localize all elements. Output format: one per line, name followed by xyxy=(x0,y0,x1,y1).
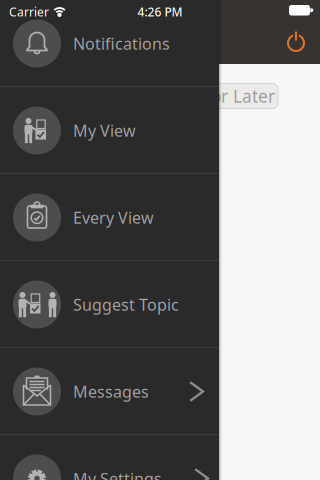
staticText: Notifications xyxy=(73,33,170,54)
button[interactable]: Vote Now or Later xyxy=(100,83,278,108)
staticText: Carrier xyxy=(9,4,49,20)
button[interactable]: My Settings xyxy=(0,435,219,480)
staticText: Suggest Topic xyxy=(73,294,179,315)
staticText: My View xyxy=(73,120,136,141)
button[interactable]: Notifications xyxy=(0,0,219,87)
staticText: Every View xyxy=(73,207,154,228)
button[interactable] xyxy=(274,22,318,62)
button[interactable]: Messages xyxy=(0,348,219,435)
staticText: My Settings xyxy=(73,468,162,480)
staticText: 4:26 PM xyxy=(137,4,182,20)
staticText: Messages xyxy=(73,381,149,402)
staticText: Vote Now or Later xyxy=(128,84,275,107)
button[interactable]: My View xyxy=(0,87,219,174)
button[interactable]: Suggest Topic xyxy=(0,261,219,348)
button[interactable]: Every View xyxy=(0,174,219,261)
